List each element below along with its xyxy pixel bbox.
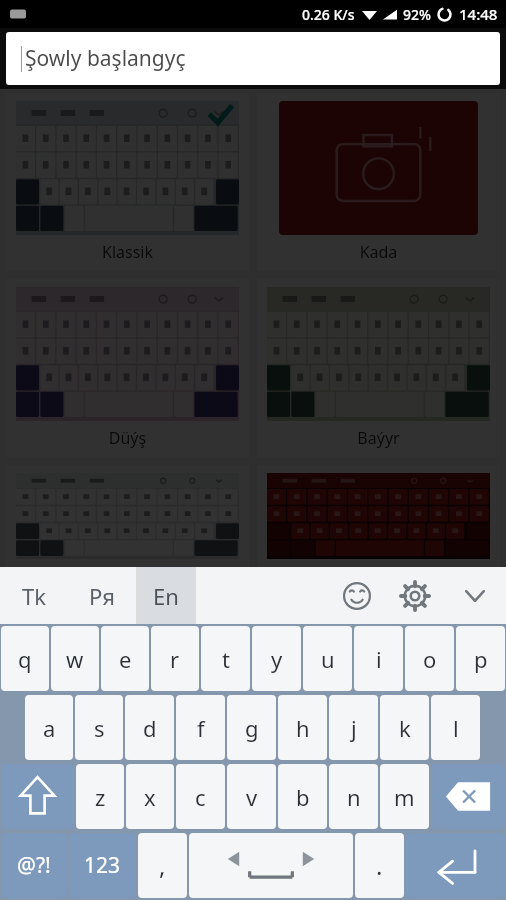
button[interactable]: c — [176, 764, 225, 829]
button[interactable]: q — [1, 626, 49, 691]
button[interactable]: z — [76, 764, 124, 829]
staticText: , — [159, 849, 166, 882]
staticText: 123 — [84, 851, 121, 880]
staticText: t — [222, 644, 230, 674]
button[interactable]: b — [278, 764, 327, 829]
button[interactable]: w — [51, 626, 99, 691]
staticText: Tk — [22, 581, 46, 611]
staticText: 14:48 — [459, 4, 498, 24]
staticText: 0.26 K/s — [302, 5, 355, 24]
button[interactable]: Kada — [257, 93, 500, 271]
button[interactable]: i — [354, 626, 403, 691]
button[interactable]: Shift — [1, 764, 74, 829]
staticText: Klassik — [16, 241, 239, 263]
button[interactable]: d — [125, 695, 174, 760]
staticText: s — [94, 713, 105, 743]
button[interactable]: o — [405, 626, 454, 691]
staticText: w — [66, 644, 84, 674]
button[interactable]: a — [25, 695, 73, 760]
button[interactable]: l — [431, 695, 480, 760]
button[interactable]: 123 — [69, 833, 136, 898]
staticText: x — [144, 782, 156, 812]
button[interactable]: e — [101, 626, 149, 691]
button[interactable]: Ak — [6, 465, 249, 567]
staticText: p — [474, 644, 488, 674]
button[interactable]: Baýyr — [257, 279, 500, 457]
button[interactable]: f — [176, 695, 225, 760]
staticText: u — [321, 644, 335, 674]
button[interactable]: u — [303, 626, 352, 691]
button[interactable]: , — [138, 833, 187, 898]
staticText: Düýş — [16, 427, 239, 449]
button[interactable]: n — [329, 764, 378, 829]
button[interactable]: Pя — [68, 567, 136, 624]
staticText: @?! — [17, 851, 51, 880]
button[interactable]: Enter — [406, 833, 505, 898]
staticText: r — [170, 644, 180, 674]
staticText: c — [195, 782, 206, 812]
staticText: i — [376, 644, 382, 674]
staticText: Baýyr — [267, 427, 490, 449]
button[interactable]: t — [201, 626, 250, 691]
staticText: q — [18, 644, 32, 674]
staticText: . — [376, 849, 383, 882]
button[interactable]: m — [380, 764, 429, 829]
button[interactable]: p — [456, 626, 505, 691]
staticText: m — [394, 782, 415, 812]
staticText: Pя — [89, 581, 116, 611]
button[interactable]: Düýş — [6, 279, 249, 457]
button[interactable]: k — [380, 695, 429, 760]
button[interactable]: h — [278, 695, 327, 760]
button[interactable]: g — [227, 695, 276, 760]
button[interactable]: En — [136, 567, 196, 624]
staticText: g — [245, 713, 259, 743]
staticText: Kada — [267, 241, 490, 263]
button[interactable]: Klassik — [6, 93, 249, 271]
staticText: y — [271, 644, 283, 674]
button[interactable]: Tk — [0, 567, 68, 624]
button[interactable]: r — [151, 626, 199, 691]
staticText: d — [143, 713, 157, 743]
button[interactable]: @?! — [1, 833, 67, 898]
staticText: f — [197, 713, 205, 743]
staticText: En — [153, 581, 179, 611]
button[interactable]: Gyzyl — [257, 465, 500, 567]
staticText: k — [399, 713, 411, 743]
staticText: 92% — [403, 5, 431, 24]
staticText: o — [423, 644, 437, 674]
staticText: j — [351, 713, 357, 743]
button[interactable]: Settings — [386, 567, 444, 624]
button[interactable]: Şowly başlangyç — [6, 32, 500, 85]
staticText: b — [296, 782, 310, 812]
button[interactable]: Hide keyboard — [444, 567, 506, 624]
button[interactable]: x — [126, 764, 174, 829]
button[interactable]: j — [329, 695, 378, 760]
button[interactable]: y — [252, 626, 301, 691]
button[interactable]: Emoji — [328, 567, 386, 624]
staticText: a — [43, 713, 56, 743]
staticText: z — [95, 782, 106, 812]
button[interactable]: s — [75, 695, 123, 760]
staticText: l — [453, 713, 459, 743]
staticText: n — [347, 782, 361, 812]
staticText: Şowly başlangyç — [25, 44, 186, 73]
button[interactable]: Backspace — [431, 764, 505, 829]
button[interactable]: . — [355, 833, 404, 898]
button[interactable]: Space — [189, 833, 353, 898]
staticText: v — [246, 782, 258, 812]
button[interactable]: v — [227, 764, 276, 829]
staticText: h — [296, 713, 310, 743]
staticText: e — [119, 644, 132, 674]
